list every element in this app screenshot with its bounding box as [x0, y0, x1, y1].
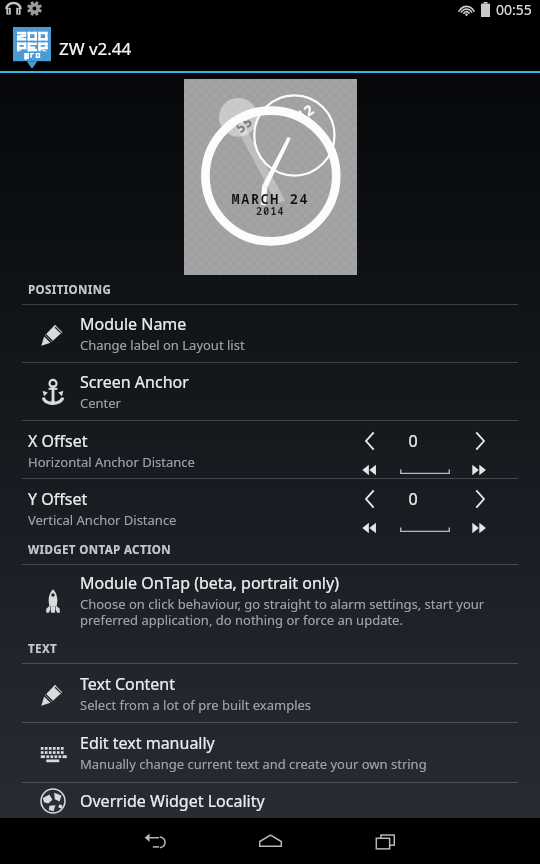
button[interactable]: Decrease — [350, 421, 390, 461]
button[interactable]: Back — [125, 818, 185, 864]
button[interactable]: Decrease fast — [350, 508, 390, 548]
button[interactable]: Text Content — [0, 664, 540, 723]
button[interactable]: Increase — [460, 479, 500, 519]
button[interactable]: Screen Anchor — [0, 363, 540, 421]
staticText: Module Name — [80, 313, 187, 335]
button[interactable]: Increase fast — [460, 508, 500, 548]
staticText: WIDGET ONTAP ACTION — [28, 542, 172, 558]
staticText: 00:55 — [496, 0, 532, 19]
button[interactable]: X Offset — [0, 421, 340, 478]
button[interactable]: Widget preview — [184, 79, 357, 275]
button[interactable]: Recent apps — [355, 818, 415, 864]
staticText: ZW v2.44 — [59, 37, 132, 60]
staticText: Text Content — [80, 673, 176, 695]
staticText: Choose on click behaviour, go straight t… — [80, 595, 514, 628]
staticText: Edit text manually — [80, 732, 215, 754]
button[interactable]: Y Offset — [0, 479, 340, 536]
button[interactable]: Home — [240, 818, 300, 864]
staticText: Center — [80, 394, 121, 412]
button[interactable]: Zooper Widget — [13, 27, 51, 69]
staticText: Horizontal Anchor Distance — [28, 453, 195, 471]
staticText: Manually change current text and create … — [80, 755, 427, 773]
staticText: Vertical Anchor Distance — [28, 511, 177, 529]
staticText: Y Offset — [28, 488, 88, 510]
staticText: 0 — [388, 488, 438, 510]
button[interactable]: Module OnTap (beta, portrait only) — [0, 565, 540, 635]
button[interactable]: Increase fast — [460, 450, 500, 490]
button[interactable]: Edit text manually — [0, 723, 540, 783]
button[interactable]: Decrease fast — [350, 450, 390, 490]
staticText: Module OnTap (beta, portrait only) — [80, 572, 339, 594]
staticText: Change label on Layout list — [80, 336, 245, 354]
button[interactable]: Override Widget Locality — [0, 783, 540, 818]
staticText: X Offset — [28, 430, 88, 452]
staticText: 0 — [388, 430, 438, 452]
button[interactable]: Decrease — [350, 479, 390, 519]
staticText: Screen Anchor — [80, 371, 189, 393]
button[interactable]: Increase — [460, 421, 500, 461]
button[interactable]: Module Name — [0, 305, 540, 363]
staticText: Select from a lot of pre built examples — [80, 696, 312, 714]
staticText: Override Widget Locality — [80, 790, 265, 812]
staticText: TEXT — [28, 641, 58, 657]
staticText: POSITIONING — [28, 282, 112, 298]
